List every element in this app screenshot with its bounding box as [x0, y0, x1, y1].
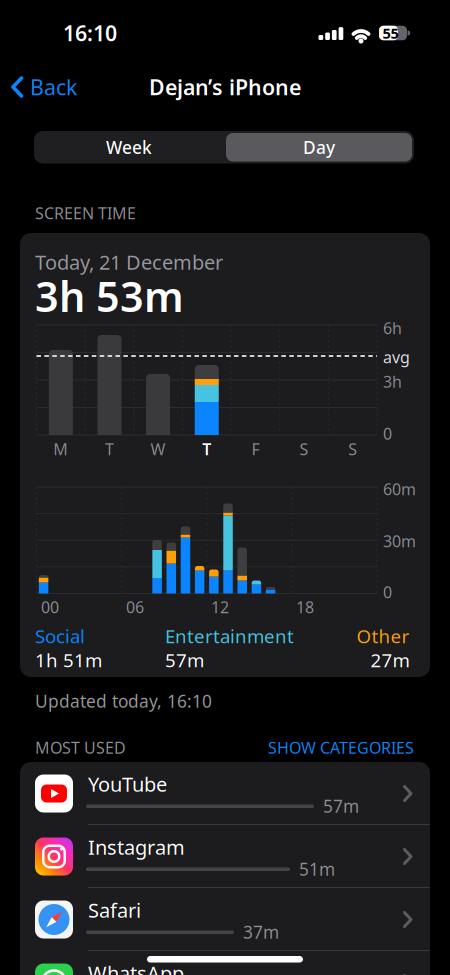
staticText: W: [151, 438, 166, 460]
staticText: T: [105, 438, 114, 460]
staticText: M: [53, 438, 68, 460]
staticText: 6h: [383, 317, 402, 339]
staticText: YouTube: [88, 771, 167, 797]
staticText: 57m: [165, 648, 204, 672]
staticText: SHOW CATEGORIES: [268, 737, 414, 758]
staticText: T: [202, 438, 211, 460]
staticText: MOST USED: [35, 737, 126, 758]
button[interactable]: YouTube: [20, 762, 430, 825]
staticText: Entertainment: [165, 624, 294, 648]
button[interactable]: WhatsApp: [20, 951, 430, 975]
staticText: Day: [303, 136, 335, 159]
staticText: 00: [41, 596, 59, 618]
button[interactable]: Day: [226, 133, 412, 161]
button[interactable]: Back: [0, 72, 95, 102]
staticText: Dejan’s iPhone: [149, 73, 301, 101]
staticText: 0: [383, 581, 392, 603]
staticText: Updated today, 16:10: [35, 689, 212, 712]
button[interactable]: Safari: [20, 888, 430, 951]
staticText: S: [299, 438, 308, 460]
staticText: 16:10: [63, 19, 117, 47]
button[interactable]: Instagram: [20, 825, 430, 888]
staticText: 37m: [243, 920, 279, 943]
staticText: F: [251, 438, 259, 460]
staticText: 3h: [383, 371, 402, 392]
staticText: 1h 51m: [35, 648, 102, 672]
staticText: 60m: [383, 478, 416, 500]
staticText: SCREEN TIME: [35, 202, 136, 224]
staticText: 51m: [299, 857, 335, 880]
staticText: Safari: [88, 897, 141, 923]
staticText: Week: [106, 136, 152, 159]
staticText: WhatsApp: [88, 960, 184, 975]
staticText: Instagram: [88, 834, 185, 860]
staticText: 12: [211, 596, 229, 618]
staticText: Other: [356, 624, 409, 648]
staticText: Today, 21 December: [35, 249, 223, 275]
staticText: S: [348, 438, 357, 460]
staticText: 3h 53m: [35, 269, 184, 323]
staticText: 30m: [383, 530, 416, 552]
staticText: 06: [126, 596, 144, 618]
staticText: 0: [383, 423, 392, 444]
staticText: 27m: [370, 648, 409, 672]
button[interactable]: SHOW CATEGORIES: [0, 0, 300, 30]
staticText: 57m: [323, 794, 359, 817]
staticText: 18: [296, 596, 314, 618]
staticText: Social: [35, 624, 85, 648]
button[interactable]: Week: [36, 133, 222, 161]
staticText: avg: [383, 346, 410, 368]
staticText: 55: [382, 23, 398, 43]
staticText: Back: [30, 73, 77, 101]
